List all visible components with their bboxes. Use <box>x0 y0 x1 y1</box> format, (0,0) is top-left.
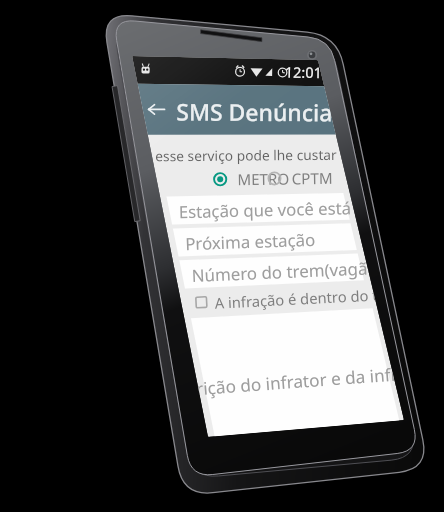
button[interactable]: Navigate up <box>137 66 171 96</box>
button[interactable] <box>159 160 341 192</box>
button[interactable] <box>185 285 387 419</box>
button[interactable] <box>256 136 314 160</box>
button[interactable] <box>171 228 353 260</box>
button[interactable] <box>179 258 351 282</box>
button[interactable] <box>165 194 347 226</box>
button[interactable] <box>196 132 256 156</box>
